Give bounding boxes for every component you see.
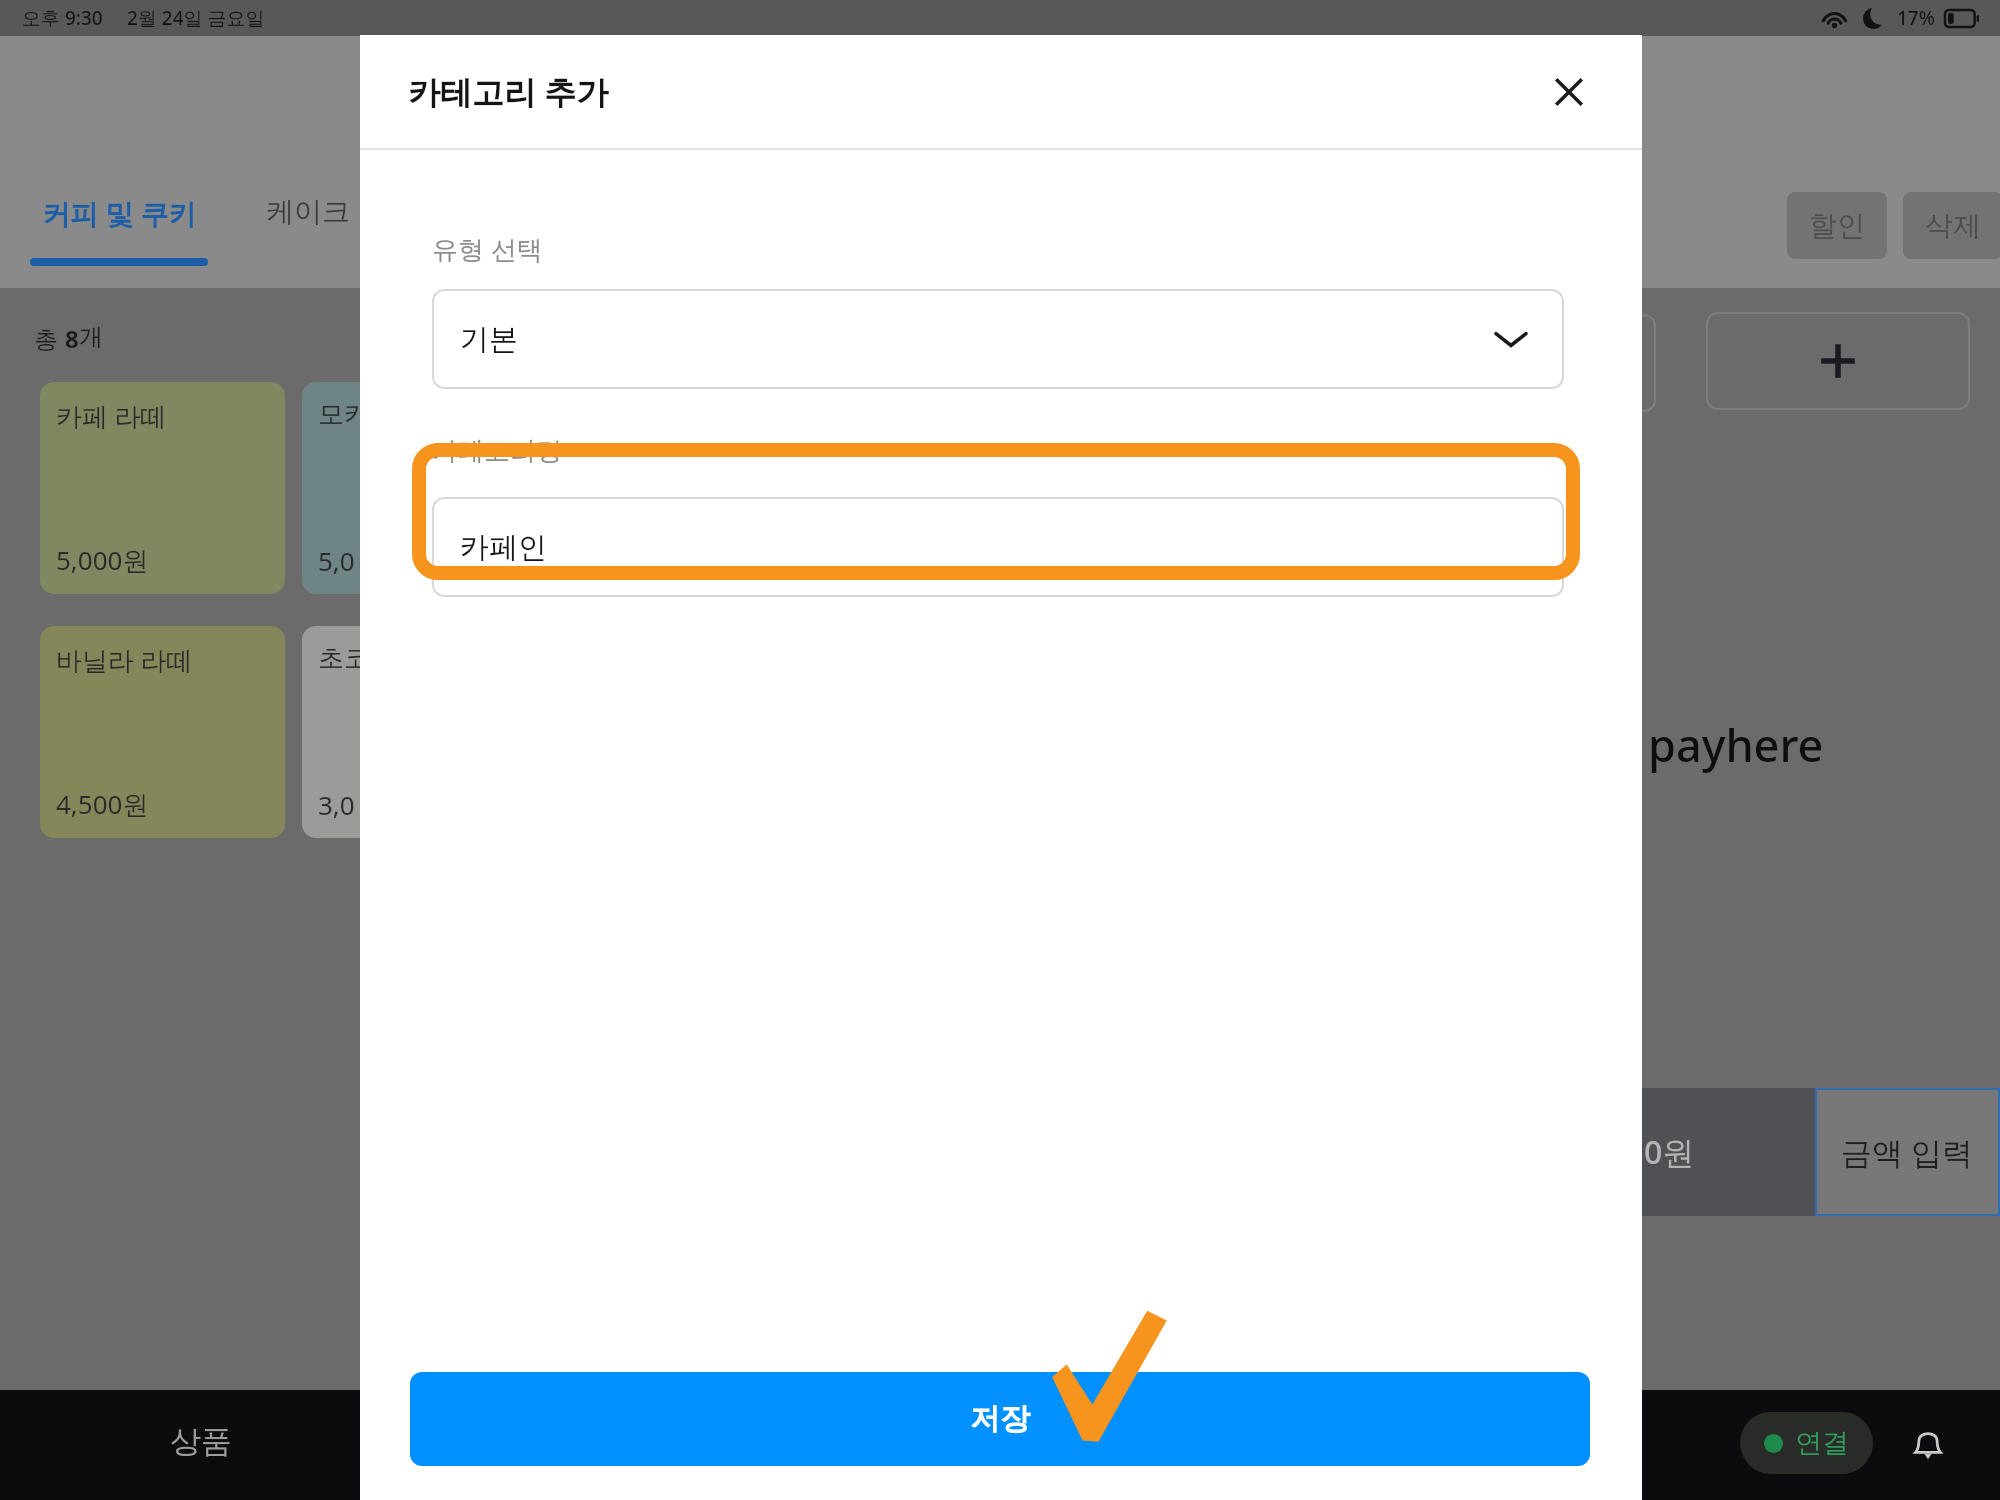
button[interactable]: 금액 입력	[1815, 1088, 2000, 1216]
staticText: 8	[65, 322, 79, 355]
staticText: 카테고리명	[432, 435, 562, 468]
button[interactable]: 할인	[1787, 192, 1887, 259]
button[interactable]: 카페인	[432, 497, 1564, 597]
button[interactable]: Add item	[1706, 312, 1970, 410]
staticText: payhere	[1648, 714, 1824, 775]
staticText: 저장	[970, 1400, 1030, 1438]
staticText: 모카	[318, 398, 370, 431]
staticText: 카페인	[460, 529, 547, 566]
button[interactable]: 상품	[170, 1422, 232, 1461]
button[interactable]: 기본	[432, 289, 1564, 389]
button[interactable]: 연결	[1740, 1412, 1873, 1474]
staticText: 초코	[318, 642, 370, 675]
button[interactable]: 저장	[410, 1372, 1590, 1466]
staticText: 상품	[170, 1422, 232, 1461]
staticText: 커피 및 쿠키	[42, 194, 197, 232]
staticText: 2월 24일 금요일	[127, 5, 265, 31]
staticText: 유형 선택	[432, 231, 543, 267]
button[interactable]: 커피 및 쿠키	[30, 194, 208, 266]
staticText: 4,500원	[56, 786, 149, 822]
button[interactable]: Close	[1538, 61, 1600, 123]
staticText: 오후 9:30	[22, 5, 103, 31]
staticText: 할인	[1809, 208, 1865, 243]
staticText: 총	[34, 322, 65, 355]
staticText: 5,000원	[56, 542, 149, 578]
staticText: 카페 라떼	[56, 398, 167, 434]
button[interactable]: 케이크	[266, 194, 350, 229]
button[interactable]: 바닐라 라떼	[40, 626, 285, 838]
staticText: 카테고리 추가	[408, 70, 609, 114]
staticText: 삭제	[1925, 208, 1981, 243]
staticText: 5,0	[318, 543, 355, 578]
staticText: 연결	[1795, 1426, 1849, 1460]
button[interactable]: 초코	[302, 626, 547, 838]
staticText: 0원	[1644, 1130, 1695, 1174]
staticText: 개	[79, 322, 103, 352]
button[interactable]: 모카	[302, 382, 547, 594]
staticText: 3,0	[318, 787, 355, 822]
button[interactable]: Notifications	[1900, 1416, 1956, 1472]
staticText: 17%	[1897, 5, 1935, 31]
button[interactable]: 카페 라떼	[40, 382, 285, 594]
staticText: 케이크	[266, 194, 350, 229]
staticText: 금액 입력	[1841, 1131, 1974, 1173]
button[interactable]: 삭제	[1903, 192, 2000, 259]
staticText: 기본	[460, 321, 518, 358]
staticText: 바닐라 라떼	[56, 642, 193, 678]
